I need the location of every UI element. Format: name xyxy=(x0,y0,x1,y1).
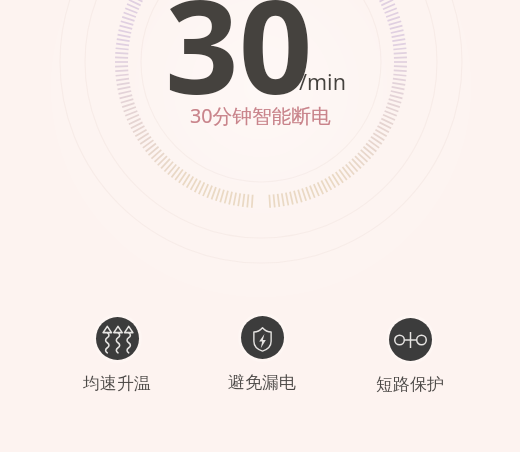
staticText: 30分钟智能断电 xyxy=(190,102,331,129)
staticText: 30 xyxy=(165,0,313,132)
other: 均速升温 xyxy=(93,314,142,363)
staticText: 避免漏电 xyxy=(228,372,296,393)
staticText: 短路保护 xyxy=(376,374,444,395)
button[interactable]: 短路保护 xyxy=(350,315,470,395)
other: 短路保护 xyxy=(386,315,435,364)
button[interactable]: 避免漏电 xyxy=(202,313,322,393)
staticText: /min xyxy=(299,67,346,96)
staticText: 均速升温 xyxy=(83,373,151,394)
button[interactable]: 均速升温 xyxy=(57,314,177,394)
other: 避免漏电 xyxy=(238,313,287,362)
